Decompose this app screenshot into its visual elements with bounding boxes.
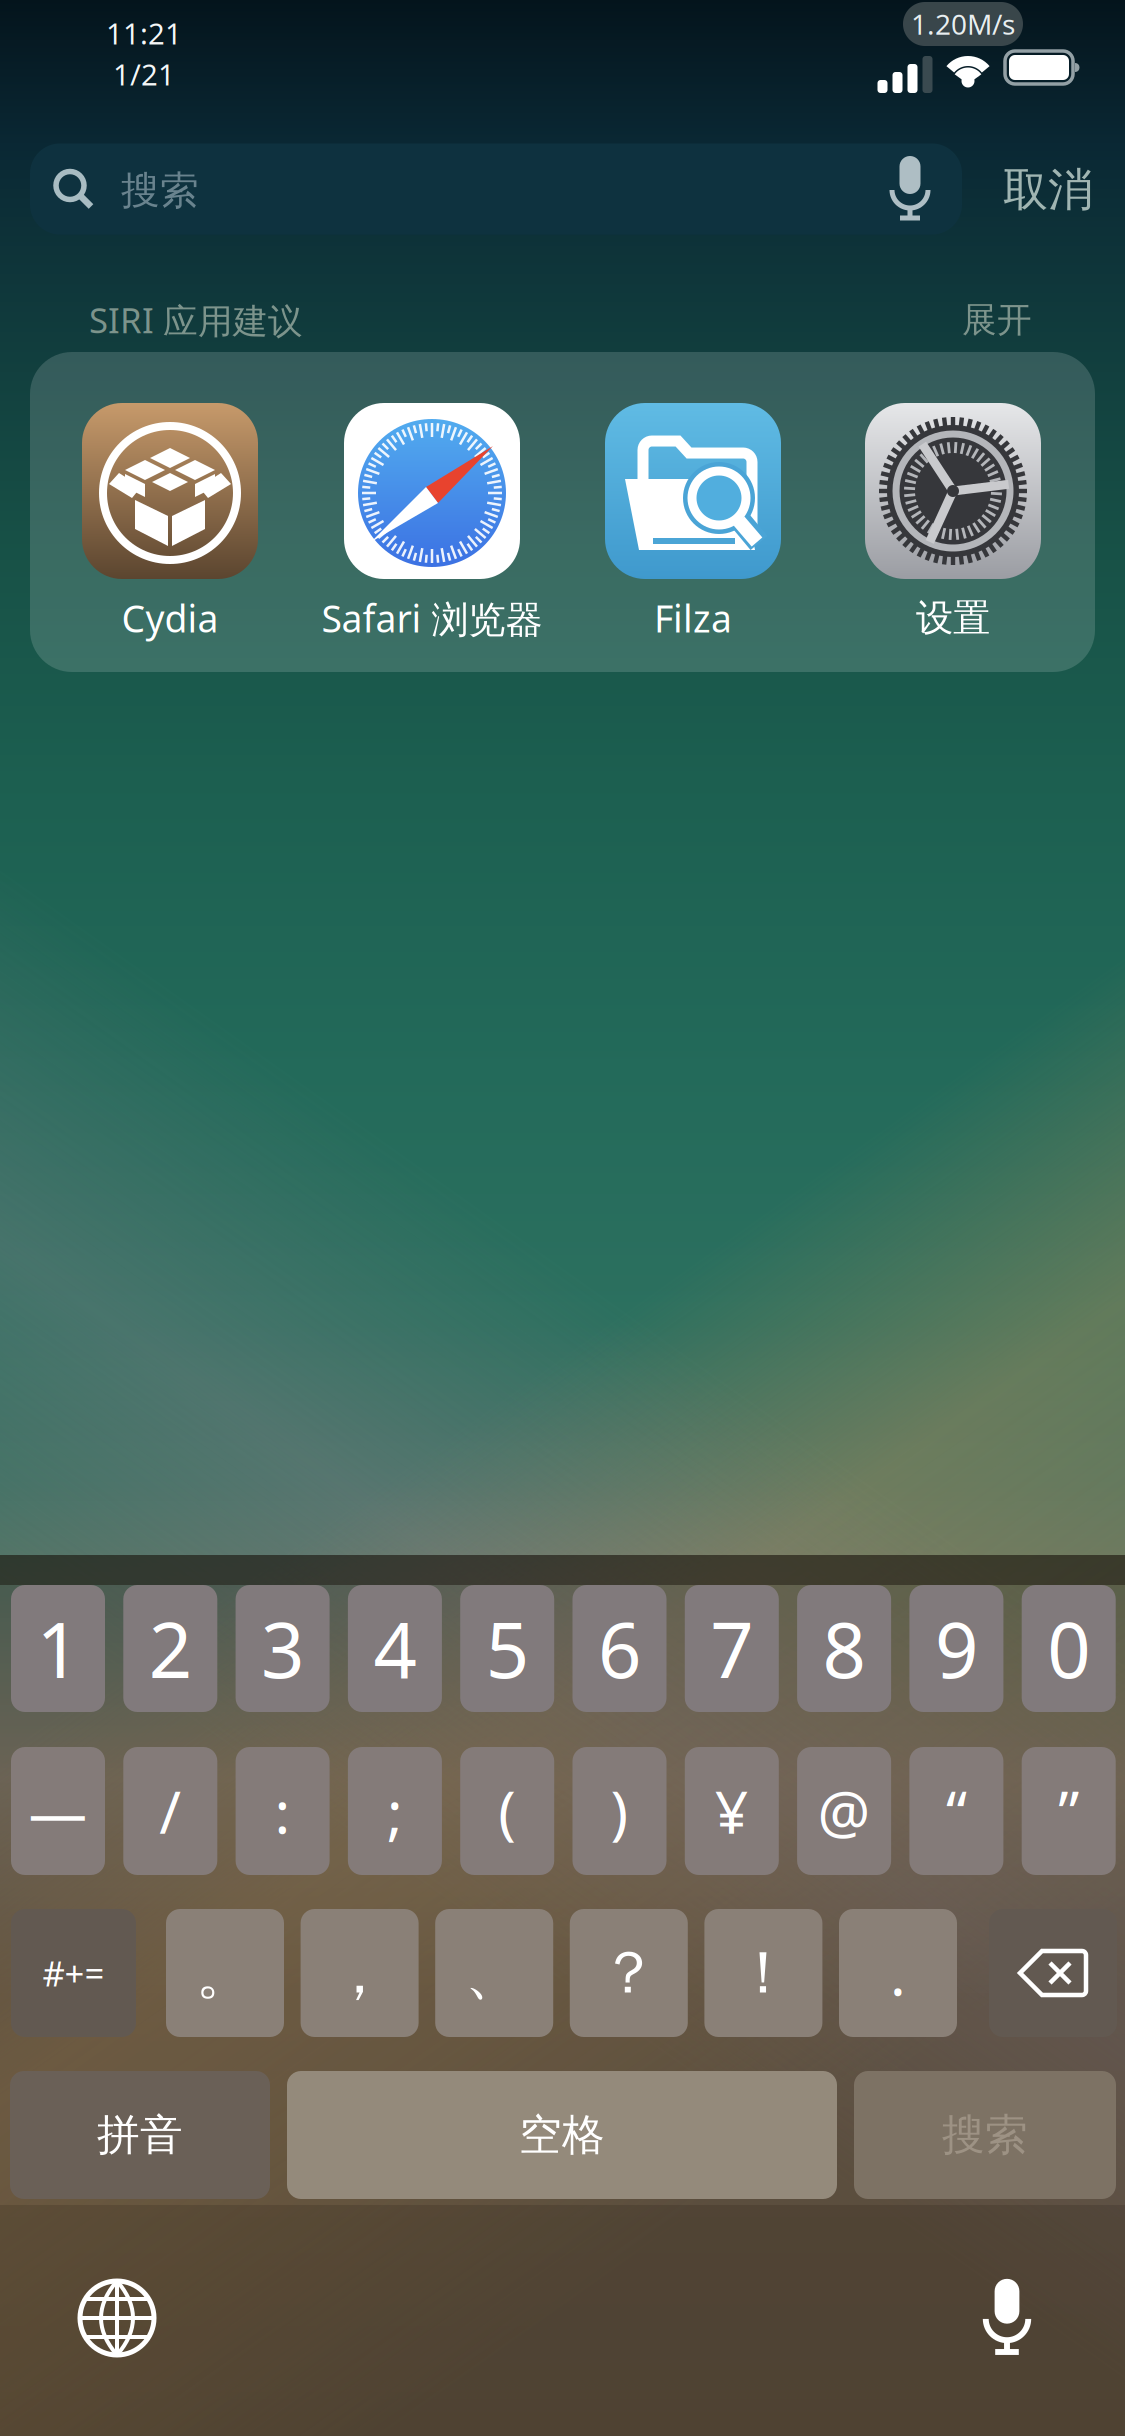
button[interactable]: 拼音 xyxy=(10,2071,270,2199)
staticText: 4 xyxy=(373,1598,416,1699)
staticText: SIRI 应用建议 xyxy=(89,297,303,343)
staticText: 1.20M/s xyxy=(911,5,1015,43)
staticText: ， xyxy=(330,1937,389,2009)
button[interactable]: “ xyxy=(909,1747,1003,1875)
button[interactable]: #+= xyxy=(11,1909,136,2037)
staticText: @ xyxy=(818,1772,871,1850)
button[interactable]: ¥ xyxy=(685,1747,779,1875)
button[interactable]: 搜索 xyxy=(30,143,962,234)
staticText: 8 xyxy=(823,1598,866,1699)
button[interactable]: ) xyxy=(572,1747,666,1875)
button[interactable]: 7 xyxy=(685,1585,779,1712)
staticText: #+= xyxy=(42,1950,104,1996)
button[interactable]: 取消 xyxy=(1003,162,1093,218)
staticText: Filza xyxy=(654,593,732,643)
staticText: Safari 浏览器 xyxy=(321,593,542,643)
staticText: : xyxy=(275,1772,291,1850)
button[interactable]: @ xyxy=(797,1747,891,1875)
staticText: 展开 xyxy=(962,299,1032,341)
button[interactable]: Next keyboard xyxy=(77,2278,157,2358)
staticText: Cydia xyxy=(121,593,218,643)
staticText: 搜索 xyxy=(942,2109,1028,2161)
staticText: 11:21 xyxy=(106,13,182,52)
staticText: 拼音 xyxy=(97,2109,183,2161)
staticText: 搜索 xyxy=(121,167,199,214)
staticText: 1 xyxy=(36,1598,79,1699)
button[interactable]: 搜索 xyxy=(854,2071,1116,2199)
staticText: 9 xyxy=(935,1598,978,1699)
staticText: ( xyxy=(498,1772,516,1850)
staticText: . xyxy=(890,1934,906,2012)
staticText: 5 xyxy=(486,1598,529,1699)
staticText: “ xyxy=(946,1772,967,1850)
staticText: 、 xyxy=(465,1937,524,2009)
button[interactable]: : xyxy=(236,1747,330,1875)
button[interactable]: 8 xyxy=(797,1585,891,1712)
button[interactable]: ！ xyxy=(704,1909,822,2037)
staticText: ; xyxy=(387,1772,403,1850)
button[interactable]: ， xyxy=(301,1909,419,2037)
button[interactable]: ？ xyxy=(570,1909,688,2037)
staticText: 0 xyxy=(1047,1598,1090,1699)
button[interactable]: 5 xyxy=(460,1585,554,1712)
button[interactable]: / xyxy=(123,1747,217,1875)
button[interactable]: Filza xyxy=(605,403,781,657)
staticText: 空格 xyxy=(519,2109,605,2161)
staticText: ) xyxy=(610,1772,628,1850)
button[interactable]: 3 xyxy=(236,1585,330,1712)
staticText: — xyxy=(28,1772,87,1850)
staticText: ¥ xyxy=(715,1772,749,1850)
button[interactable]: Safari 浏览器 xyxy=(321,403,542,657)
staticText: ” xyxy=(1058,1772,1079,1850)
staticText: 1/21 xyxy=(113,54,175,93)
button[interactable]: 0 xyxy=(1022,1585,1116,1712)
button[interactable]: . xyxy=(839,1909,957,2037)
staticText: 7 xyxy=(710,1598,753,1699)
button[interactable]: Delete xyxy=(989,1909,1117,2037)
button[interactable]: 2 xyxy=(123,1585,217,1712)
staticText: 。 xyxy=(195,1937,254,2009)
button[interactable]: 设置 xyxy=(865,403,1041,657)
staticText: 取消 xyxy=(1003,162,1093,218)
staticText: 设置 xyxy=(916,595,990,641)
staticText: ？ xyxy=(599,1937,658,2009)
staticText: ！ xyxy=(734,1937,793,2009)
staticText: 6 xyxy=(598,1598,641,1699)
button[interactable]: Dictate xyxy=(975,2276,1039,2356)
button[interactable]: 1 xyxy=(11,1585,105,1712)
button[interactable]: ” xyxy=(1022,1747,1116,1875)
staticText: 3 xyxy=(261,1598,304,1699)
staticText: 2 xyxy=(149,1598,192,1699)
button[interactable]: Cydia xyxy=(82,403,258,657)
button[interactable]: 、 xyxy=(435,1909,553,2037)
staticText: / xyxy=(159,1772,181,1850)
button[interactable]: ; xyxy=(348,1747,442,1875)
button[interactable]: 6 xyxy=(572,1585,666,1712)
button[interactable]: 空格 xyxy=(287,2071,837,2199)
button[interactable]: — xyxy=(11,1747,105,1875)
button[interactable]: 9 xyxy=(909,1585,1003,1712)
button[interactable]: 展开 xyxy=(962,299,1032,341)
button[interactable]: 。 xyxy=(166,1909,284,2037)
button[interactable]: ( xyxy=(460,1747,554,1875)
button[interactable]: 4 xyxy=(348,1585,442,1712)
